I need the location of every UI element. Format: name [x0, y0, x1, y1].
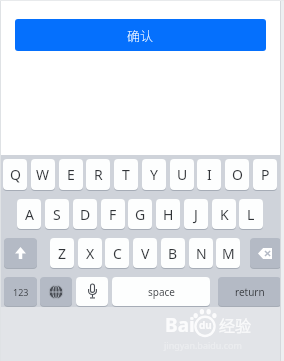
button[interactable] — [4, 238, 37, 268]
button[interactable] — [76, 277, 108, 306]
staticText: O — [232, 165, 243, 184]
button[interactable]: N — [189, 238, 213, 268]
staticText: 经验 — [219, 313, 252, 336]
staticText: F — [109, 205, 117, 224]
button[interactable]: Q — [3, 159, 27, 190]
staticText: return — [235, 285, 265, 299]
button[interactable]: T — [114, 159, 138, 190]
button[interactable]: 确认 — [15, 19, 266, 51]
staticText: V — [141, 244, 150, 263]
button[interactable]: G — [128, 199, 152, 229]
staticText: G — [135, 205, 146, 224]
button[interactable]: J — [184, 199, 208, 229]
staticText: du — [199, 318, 212, 332]
staticText: J — [194, 205, 198, 224]
staticText: H — [163, 205, 174, 224]
button[interactable]: U — [170, 159, 194, 190]
staticText: A — [25, 205, 34, 224]
staticText: Q — [10, 165, 21, 184]
staticText: X — [86, 244, 95, 263]
staticText: 确认 — [127, 26, 154, 45]
button[interactable]: C — [105, 238, 129, 268]
button[interactable]: D — [73, 199, 97, 229]
staticText: D — [80, 205, 91, 224]
button[interactable]: X — [78, 238, 102, 268]
button[interactable]: E — [59, 159, 83, 190]
staticText: space — [148, 285, 175, 299]
button[interactable]: 123 — [4, 277, 37, 306]
staticText: 123 — [13, 286, 29, 298]
button[interactable]: I — [197, 159, 221, 190]
button[interactable] — [40, 277, 72, 306]
staticText: P — [261, 165, 270, 184]
staticText: N — [196, 244, 207, 263]
staticText: W — [36, 165, 50, 184]
button[interactable]: R — [86, 159, 110, 190]
staticText: Z — [58, 244, 67, 263]
staticText: jingyan.baidu.com — [164, 339, 242, 351]
button[interactable]: L — [239, 199, 263, 229]
staticText: Y — [150, 165, 158, 184]
button[interactable]: B — [161, 238, 185, 268]
button[interactable]: Y — [142, 159, 166, 190]
button[interactable]: K — [212, 199, 236, 229]
staticText: K — [220, 205, 229, 224]
button[interactable]: M — [216, 238, 240, 268]
staticText: L — [247, 205, 255, 224]
button[interactable] — [250, 238, 281, 268]
button[interactable]: H — [156, 199, 180, 229]
button[interactable]: S — [45, 199, 69, 229]
button[interactable]: F — [101, 199, 125, 229]
staticText: T — [122, 165, 130, 184]
staticText: R — [94, 165, 103, 184]
button[interactable]: P — [253, 159, 277, 190]
button[interactable]: A — [17, 199, 41, 229]
button[interactable]: W — [31, 159, 55, 190]
button[interactable]: space — [112, 277, 210, 306]
button[interactable]: V — [133, 238, 157, 268]
staticText: U — [177, 165, 188, 184]
staticText: C — [113, 244, 122, 263]
staticText: M — [222, 244, 235, 263]
staticText: E — [67, 165, 75, 184]
button[interactable]: O — [225, 159, 249, 190]
staticText: S — [53, 205, 61, 224]
staticText: I — [207, 165, 212, 184]
staticText: B — [168, 244, 178, 263]
button[interactable]: return — [218, 277, 281, 306]
button[interactable]: Z — [50, 238, 74, 268]
staticText: Bai — [165, 312, 195, 338]
